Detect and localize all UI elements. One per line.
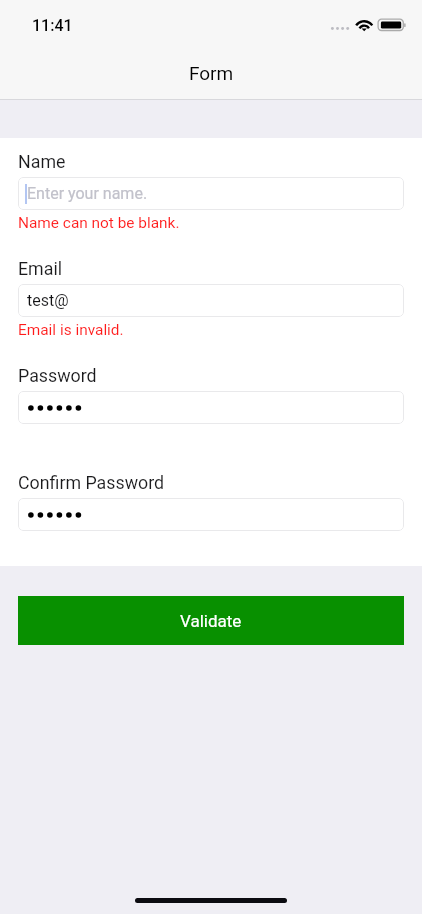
staticText: 11:41 (32, 16, 73, 35)
staticText: Form (0, 62, 422, 84)
staticText: test@ (27, 291, 69, 310)
staticText: Confirm Password (18, 472, 165, 493)
button[interactable] (18, 391, 404, 424)
staticText: Email (18, 258, 63, 279)
staticText: Enter your name. (27, 184, 148, 203)
staticText: Name (18, 151, 66, 172)
button[interactable]: Validate (18, 596, 404, 645)
button[interactable]: test@ (18, 284, 404, 317)
staticText: Password (18, 365, 97, 386)
staticText: Validate (180, 611, 242, 631)
button[interactable]: Enter your name. (18, 177, 404, 210)
staticText: Name can not be blank. (18, 214, 180, 232)
button[interactable] (18, 498, 404, 531)
staticText: Email is invalid. (18, 321, 124, 339)
other: Cellular signal, Wi-Fi and battery statu… (330, 17, 408, 33)
